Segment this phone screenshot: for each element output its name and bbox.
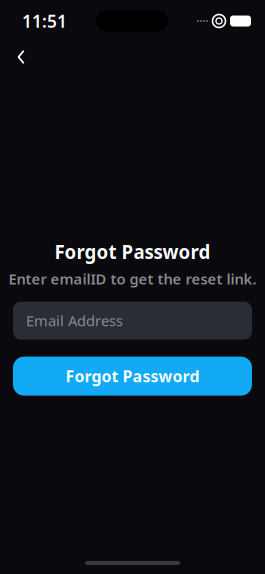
staticText: 11:51 (22, 9, 67, 32)
staticText: Email Address (26, 311, 123, 330)
staticText: Enter emailID to get the reset link. (8, 269, 256, 289)
staticText: Forgot Password (54, 239, 210, 264)
button[interactable]: Forgot Password (0, 357, 265, 396)
button[interactable]: Back (4, 40, 38, 74)
staticText: Forgot Password (65, 365, 199, 387)
